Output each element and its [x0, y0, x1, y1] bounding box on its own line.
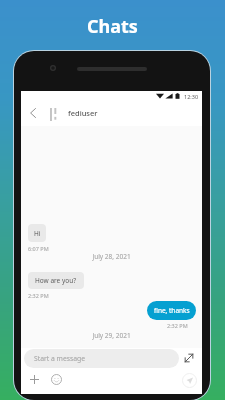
button[interactable]: Start a message — [24, 349, 179, 368]
staticText: 2:32 PM — [28, 292, 49, 299]
button[interactable]: Add attachment — [26, 371, 42, 387]
staticText: 6:07 PM — [28, 245, 49, 252]
staticText: Chats — [87, 14, 138, 39]
button[interactable]: Back — [24, 104, 42, 122]
button[interactable]: Send — [180, 371, 198, 389]
staticText: 2:32 PM — [167, 322, 188, 329]
staticText: fine, thanks — [154, 306, 190, 315]
button[interactable]: Emoji — [48, 371, 64, 387]
staticText: July 28, 2021 — [21, 252, 202, 261]
staticText: How are you? — [35, 276, 77, 285]
button[interactable]: Expand — [180, 349, 198, 367]
staticText: 12:30 — [184, 93, 199, 100]
staticText: Hi — [34, 229, 41, 238]
staticText: Start a message — [34, 354, 86, 363]
staticText: July 29, 2021 — [21, 331, 202, 340]
staticText: fediuser — [68, 108, 98, 118]
